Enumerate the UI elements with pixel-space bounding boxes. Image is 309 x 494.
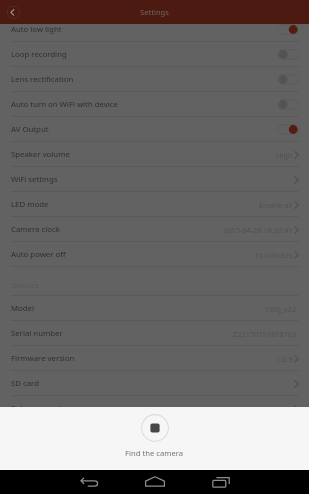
staticText: 1.0.9 bbox=[276, 354, 293, 364]
button[interactable]: Find the camera bbox=[0, 407, 309, 458]
button[interactable]: WiFi settings bbox=[0, 167, 309, 192]
staticText: AV Output bbox=[11, 124, 49, 135]
staticText: Firmware version bbox=[11, 353, 75, 364]
button[interactable]: Back bbox=[67, 470, 111, 494]
button[interactable]: Lens rectification bbox=[0, 67, 309, 92]
staticText: WiFi settings bbox=[11, 174, 58, 185]
staticText: 10 minutes bbox=[254, 250, 293, 260]
staticText: Speaker volume bbox=[11, 149, 70, 160]
staticText: YDXJ_v22 bbox=[265, 304, 297, 314]
button[interactable]: Model bbox=[0, 296, 309, 321]
button[interactable]: Recent apps bbox=[199, 470, 243, 494]
staticText: Z221507S1878763 bbox=[233, 329, 297, 339]
staticText: Camera clock bbox=[11, 224, 60, 235]
button[interactable]: Speaker volume bbox=[0, 142, 309, 167]
button[interactable]: Enhancement bbox=[0, 396, 309, 421]
button[interactable]: Home bbox=[133, 470, 177, 494]
staticText: Serial number bbox=[11, 328, 63, 339]
staticText: SD card bbox=[11, 378, 39, 389]
button[interactable]: LED mode bbox=[0, 192, 309, 217]
button[interactable]: Auto turn on WiFi with device bbox=[0, 92, 309, 117]
staticText: Loop recording bbox=[11, 49, 67, 60]
button[interactable]: Back bbox=[0, 0, 24, 24]
staticText: Enhancement bbox=[11, 403, 62, 414]
staticText: Auto low light bbox=[11, 24, 62, 35]
staticText: Enable all bbox=[259, 200, 293, 210]
staticText: LED mode bbox=[11, 199, 49, 210]
staticText: High bbox=[276, 150, 293, 160]
staticText: Auto power off bbox=[11, 249, 66, 260]
staticText: Model bbox=[11, 303, 34, 314]
button[interactable]: Loop recording bbox=[0, 42, 309, 67]
staticText: Lens rectification bbox=[11, 74, 74, 85]
button[interactable]: Auto low light bbox=[0, 17, 309, 42]
button[interactable]: Serial number bbox=[0, 321, 309, 346]
button[interactable]: Auto power off bbox=[0, 242, 309, 267]
staticText: Auto turn on WiFi with device bbox=[11, 99, 118, 110]
button[interactable]: Firmware version bbox=[0, 346, 309, 371]
staticText: Settings bbox=[140, 7, 169, 17]
button[interactable]: Camera clock bbox=[0, 217, 309, 242]
staticText: Find the camera bbox=[125, 448, 184, 458]
button[interactable]: SD card bbox=[0, 371, 309, 396]
staticText: 2015-04-28 18:32:41 bbox=[223, 225, 293, 235]
button[interactable]: AV Output bbox=[0, 117, 309, 142]
